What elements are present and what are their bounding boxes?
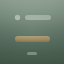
button[interactable]: Page indicator: [0, 42, 64, 64]
other: App icon: [14, 14, 21, 21]
button[interactable]: [15, 36, 50, 42]
button[interactable]: App icon: [0, 0, 64, 34]
